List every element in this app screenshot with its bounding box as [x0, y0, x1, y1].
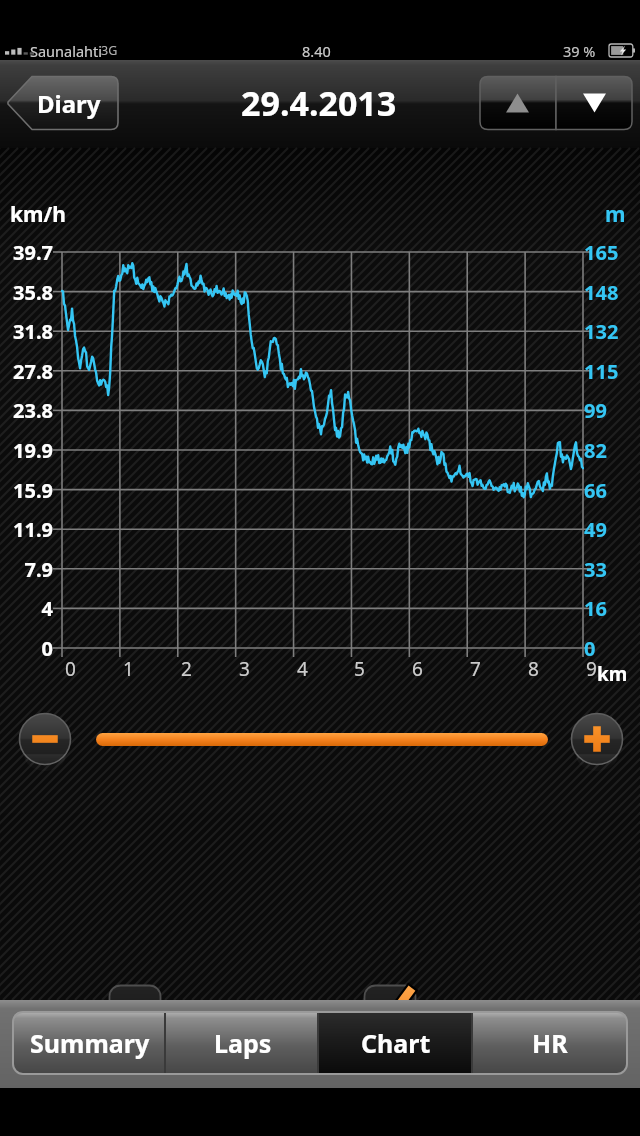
- staticText: ALTITUDE: [435, 994, 561, 1029]
- staticText: 8: [528, 656, 539, 682]
- staticText: Laps: [214, 1026, 272, 1060]
- staticText: 9: [586, 656, 597, 682]
- staticText: Diary: [37, 87, 101, 120]
- button[interactable]: HR: [473, 1012, 627, 1074]
- staticText: 11.9: [0, 516, 53, 543]
- button[interactable]: Laps: [166, 1012, 319, 1074]
- staticText: SPEED: [180, 994, 259, 1029]
- staticText: 132: [584, 318, 632, 345]
- button[interactable]: Chart: [319, 1012, 473, 1074]
- staticText: 7: [470, 656, 481, 682]
- staticText: 8.40: [302, 41, 331, 60]
- staticText: 3G: [101, 42, 118, 59]
- button[interactable]: Summary: [13, 1012, 166, 1074]
- staticText: 5: [354, 656, 365, 682]
- button[interactable]: Next day: [556, 75, 633, 131]
- staticText: 1: [123, 656, 134, 682]
- staticText: 82: [584, 437, 632, 464]
- staticText: 0: [65, 656, 76, 682]
- staticText: 23.8: [0, 397, 53, 424]
- staticText: Chart: [361, 1026, 431, 1060]
- button[interactable]: Zoom slider: [96, 733, 548, 746]
- staticText: HR: [532, 1026, 568, 1060]
- staticText: 39.7: [0, 239, 53, 266]
- staticText: 4: [0, 595, 53, 622]
- staticText: 31.8: [0, 318, 53, 345]
- staticText: 66: [584, 477, 632, 504]
- staticText: 19.9: [0, 437, 53, 464]
- staticText: 39 %: [563, 41, 596, 60]
- staticText: 3: [239, 656, 250, 682]
- staticText: Saunalahti: [30, 41, 102, 60]
- staticText: 2: [181, 656, 192, 682]
- staticText: 0: [0, 635, 53, 662]
- staticText: 15.9: [0, 477, 53, 504]
- staticText: 115: [584, 358, 632, 385]
- staticText: km/h: [10, 200, 66, 229]
- staticText: 33: [584, 556, 632, 583]
- button[interactable]: ALTITUDE: [363, 984, 561, 1038]
- button[interactable]: Zoom out: [18, 712, 72, 766]
- staticText: Summary: [30, 1026, 150, 1060]
- staticText: 29.4.2013: [241, 80, 397, 126]
- button[interactable]: Zoom in: [570, 712, 624, 766]
- staticText: 27.8: [0, 358, 53, 385]
- staticText: 4: [297, 656, 308, 682]
- staticText: 0: [584, 635, 632, 662]
- button[interactable]: SPEED: [108, 984, 259, 1038]
- staticText: m: [605, 200, 626, 229]
- staticText: 49: [584, 516, 632, 543]
- staticText: 6: [412, 656, 423, 682]
- button[interactable]: Diary: [6, 75, 118, 131]
- staticText: 7.9: [0, 556, 53, 583]
- staticText: 148: [584, 279, 632, 306]
- staticText: 16: [584, 595, 632, 622]
- staticText: 35.8: [0, 279, 53, 306]
- staticText: 99: [584, 397, 632, 424]
- staticText: km: [597, 661, 628, 687]
- staticText: 165: [584, 239, 632, 266]
- button[interactable]: Previous day: [479, 75, 556, 131]
